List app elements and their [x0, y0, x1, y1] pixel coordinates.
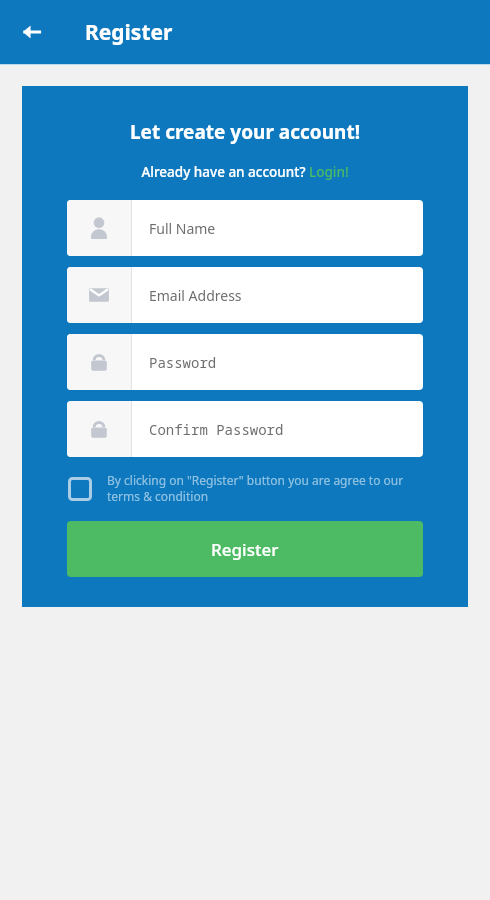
- button[interactable]: By clicking on "Register" button you are…: [67, 472, 423, 505]
- staticText: Register: [211, 538, 279, 561]
- button[interactable]: Confirm Password: [67, 401, 423, 457]
- staticText: Full Name: [149, 219, 216, 238]
- staticText: Let create your account!: [67, 119, 423, 145]
- staticText: Confirm Password: [149, 420, 284, 439]
- staticText: Password: [149, 353, 217, 372]
- staticText: Email Address: [149, 286, 242, 305]
- button[interactable]: Email Address: [67, 267, 423, 323]
- staticText: By clicking on "Register" button you are…: [107, 472, 423, 505]
- button[interactable]: Full Name: [67, 200, 423, 256]
- button[interactable]: Back: [10, 10, 54, 54]
- button[interactable]: Password: [67, 334, 423, 390]
- button[interactable]: Register: [67, 521, 423, 577]
- staticText: Register: [85, 18, 173, 47]
- staticText: Already have an account? Login!: [67, 163, 423, 181]
